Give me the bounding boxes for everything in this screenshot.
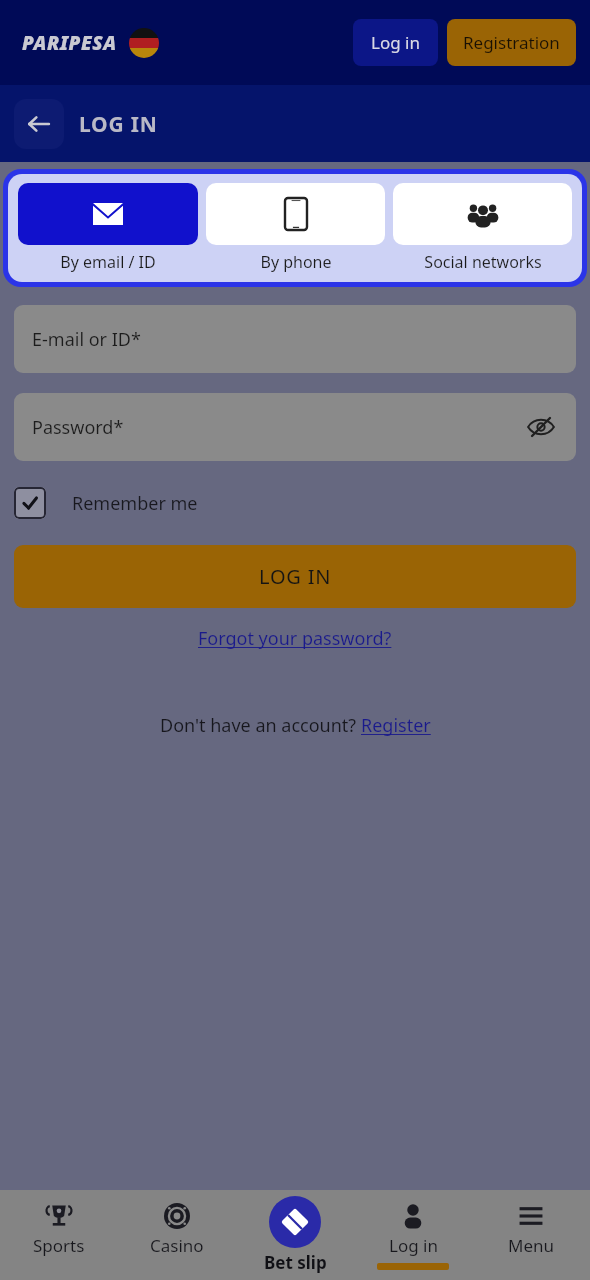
- button[interactable]: Log in: [354, 1190, 472, 1280]
- staticText: Log in: [389, 1234, 438, 1257]
- button[interactable]: Back: [14, 99, 64, 149]
- staticText: Log in: [371, 31, 420, 54]
- button[interactable]: Bet slip: [236, 1190, 354, 1280]
- button[interactable]: Remember me: [14, 487, 198, 519]
- button[interactable]: Menu: [472, 1190, 590, 1280]
- staticText: Register: [361, 713, 431, 738]
- staticText: Registration: [463, 31, 560, 54]
- staticText: LOG IN: [259, 563, 332, 590]
- staticText: By phone: [260, 251, 332, 273]
- staticText: Remember me: [72, 491, 198, 516]
- button[interactable]: Show password: [524, 410, 558, 444]
- button[interactable]: Forgot your password?: [198, 626, 392, 651]
- button[interactable]: Registration: [447, 19, 576, 66]
- button[interactable]: Password*: [14, 393, 576, 461]
- button[interactable]: LOG IN: [14, 545, 576, 608]
- staticText: PARIPESA: [22, 30, 117, 56]
- button[interactable]: By email / ID: [18, 183, 198, 273]
- button[interactable]: Log in: [353, 19, 438, 66]
- button[interactable]: E-mail or ID*: [14, 305, 576, 373]
- staticText: Bet slip: [264, 1251, 327, 1274]
- staticText: Password*: [32, 415, 124, 440]
- button[interactable]: Casino: [118, 1190, 236, 1280]
- staticText: Casino: [150, 1234, 204, 1257]
- button[interactable]: Sports: [0, 1190, 118, 1280]
- button[interactable]: Social networks: [393, 183, 572, 273]
- staticText: Sports: [33, 1234, 85, 1257]
- staticText: Forgot your password?: [198, 626, 392, 651]
- button[interactable]: By phone: [206, 183, 385, 273]
- staticText: Social networks: [424, 251, 542, 273]
- staticText: By email / ID: [60, 251, 156, 273]
- staticText: E-mail or ID*: [32, 327, 141, 352]
- button[interactable]: Register: [361, 713, 431, 738]
- staticText: LOG IN: [79, 110, 158, 139]
- button[interactable]: Language: [129, 28, 159, 58]
- staticText: Don't have an account?: [160, 713, 361, 738]
- staticText: Menu: [508, 1234, 555, 1257]
